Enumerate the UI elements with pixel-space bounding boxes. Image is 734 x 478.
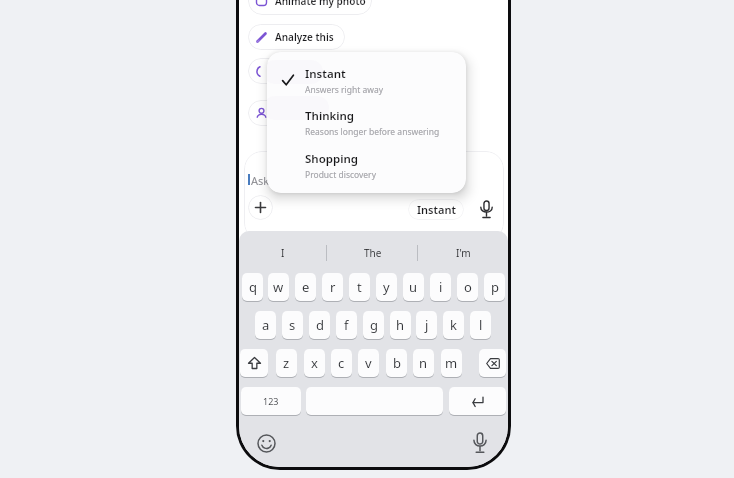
button[interactable]: l [470, 311, 491, 339]
staticText: I'm [456, 246, 471, 260]
button[interactable]: v [358, 349, 379, 377]
staticText: Shopping [305, 151, 358, 167]
button[interactable]: g [363, 311, 384, 339]
button[interactable]: I'm [418, 241, 508, 265]
button[interactable]: r [322, 273, 343, 301]
button[interactable]: Instant [408, 199, 464, 220]
button[interactable]: j [416, 311, 437, 339]
button[interactable]: a [255, 311, 276, 339]
staticText: f [344, 316, 349, 334]
staticText: y [383, 278, 390, 296]
staticText: d [316, 316, 324, 334]
staticText: Roast me [275, 64, 321, 78]
staticText: Reasons longer before answering [305, 126, 440, 138]
button[interactable] [479, 200, 494, 219]
staticText: z [283, 354, 290, 372]
staticText: t [357, 278, 362, 296]
button[interactable]: q [242, 273, 263, 301]
button[interactable]: y [376, 273, 397, 301]
button[interactable]: I [239, 241, 327, 265]
staticText: b [393, 354, 401, 372]
button[interactable]: e [295, 273, 316, 301]
button[interactable]: t [349, 273, 370, 301]
button[interactable]: s [282, 311, 303, 339]
button[interactable] [449, 387, 506, 415]
staticText: o [464, 278, 472, 296]
button[interactable]: f [336, 311, 357, 339]
staticText: n [419, 354, 428, 372]
staticText: 123 [263, 395, 279, 407]
button[interactable]: x [304, 349, 325, 377]
button[interactable]: 123 [241, 387, 301, 415]
button[interactable]: z [276, 349, 297, 377]
button[interactable]: m [441, 349, 462, 377]
staticText: h [396, 316, 405, 334]
button[interactable]: w [268, 273, 289, 301]
staticText: Analyze this [275, 30, 334, 44]
button[interactable]: p [484, 273, 505, 301]
staticText: I [281, 246, 285, 260]
button[interactable] [479, 349, 506, 377]
button[interactable]: Role play [248, 100, 353, 126]
staticText: u [409, 278, 418, 296]
button[interactable]: Instant [305, 66, 384, 96]
button[interactable] [248, 195, 273, 220]
staticText: p [491, 278, 499, 296]
staticText: Product discovery [305, 169, 376, 181]
staticText: r [330, 278, 336, 296]
button[interactable]: Animate my photo [248, 0, 372, 15]
staticText: x [311, 354, 318, 372]
staticText: Instant [305, 66, 346, 82]
button[interactable]: o [457, 273, 478, 301]
button[interactable]: u [403, 273, 424, 301]
button[interactable]: Shopping [305, 151, 376, 181]
button[interactable] [257, 434, 276, 453]
button[interactable]: Analyze this [248, 24, 345, 50]
button[interactable]: The [327, 241, 418, 265]
staticText: s [289, 316, 296, 334]
staticText: e [302, 278, 310, 296]
staticText: v [365, 354, 372, 372]
staticText: Ask anything [251, 173, 318, 188]
button[interactable]: h [390, 311, 411, 339]
button[interactable]: d [309, 311, 330, 339]
button[interactable]: k [443, 311, 464, 339]
staticText: Answers right away [305, 84, 384, 96]
staticText: c [338, 354, 345, 372]
staticText: Animate my photo [275, 0, 366, 8]
staticText: j [425, 316, 429, 334]
staticText: m [445, 354, 458, 372]
staticText: k [450, 316, 457, 334]
button[interactable] [306, 387, 443, 415]
staticText: Instant [417, 202, 456, 217]
button[interactable]: Thinking [305, 108, 440, 138]
button[interactable] [472, 432, 488, 454]
button[interactable]: Roast me [248, 58, 343, 84]
button[interactable]: b [386, 349, 407, 377]
staticText: Thinking [305, 108, 355, 124]
button[interactable] [240, 349, 268, 377]
button[interactable]: i [430, 273, 451, 301]
staticText: q [249, 278, 257, 296]
button[interactable]: c [331, 349, 352, 377]
staticText: i [439, 278, 443, 296]
staticText: w [273, 278, 284, 296]
staticText: The [364, 246, 382, 260]
staticText: l [479, 316, 483, 334]
staticText: Role play [275, 106, 320, 120]
staticText: g [370, 316, 378, 334]
button[interactable]: n [413, 349, 434, 377]
staticText: a [262, 316, 270, 334]
